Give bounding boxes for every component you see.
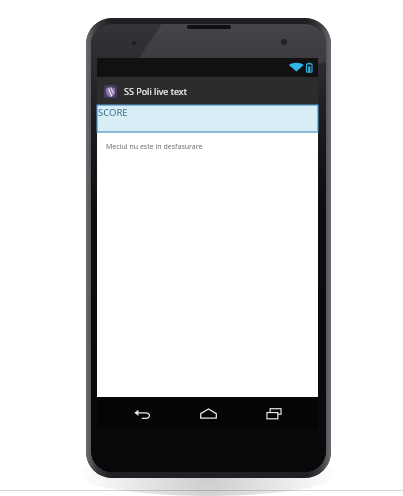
staticText: SS Poli live text bbox=[124, 85, 187, 97]
button[interactable]: Recent apps bbox=[250, 397, 298, 430]
button[interactable]: SS Poli live text bbox=[97, 77, 318, 105]
button[interactable]: Home bbox=[184, 397, 232, 430]
button[interactable]: SCORE bbox=[97, 105, 318, 132]
staticText: SCORE bbox=[98, 106, 128, 119]
button[interactable]: Back bbox=[118, 397, 166, 430]
staticText: Meciul nu este in desfasurare bbox=[106, 142, 203, 152]
